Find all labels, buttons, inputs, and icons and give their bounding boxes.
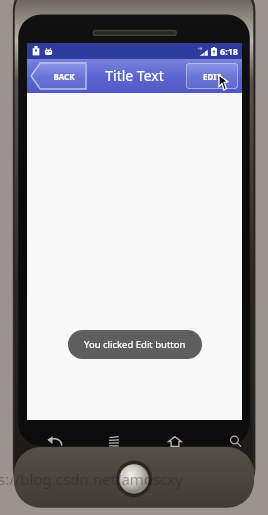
staticText: s://blog.csdn.net/amoscxy	[0, 469, 183, 489]
button[interactable]: Home	[159, 428, 191, 454]
staticText: 6:18	[220, 45, 238, 57]
staticText: You clicked Edit button	[84, 338, 186, 351]
staticText: Title Text	[105, 66, 164, 85]
staticText: BACK	[53, 71, 75, 82]
staticText: EDIT	[203, 71, 222, 82]
button[interactable]: Search	[219, 428, 251, 454]
button[interactable]: EDIT	[186, 63, 238, 89]
button[interactable]: BACK	[31, 63, 89, 89]
button[interactable]: Menu	[98, 428, 130, 454]
button[interactable]: Back	[38, 428, 70, 454]
